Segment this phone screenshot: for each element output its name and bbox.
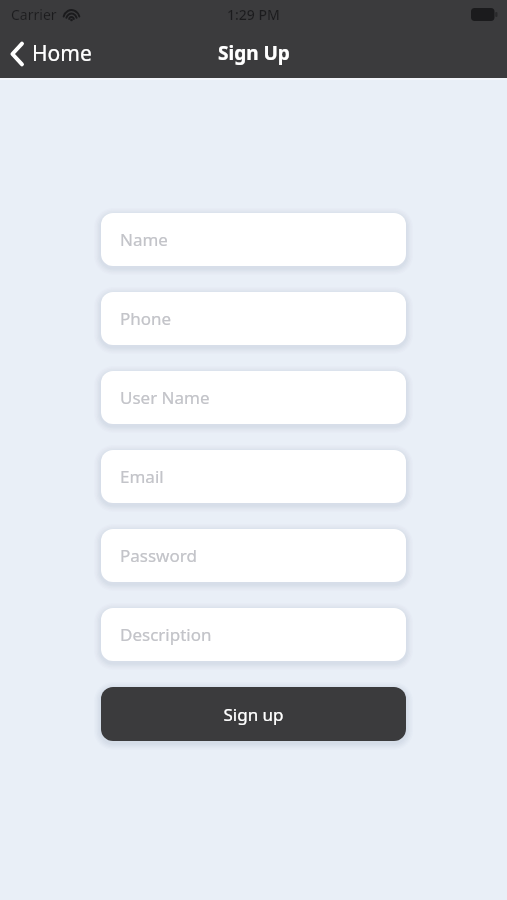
staticText: Description (120, 623, 212, 646)
staticText: Carrier (11, 5, 57, 24)
staticText: User Name (120, 386, 210, 409)
button[interactable]: Sign up (101, 687, 406, 741)
button[interactable]: Email (101, 450, 406, 503)
staticText: Home (32, 39, 92, 68)
button[interactable]: Name (101, 213, 406, 266)
staticText: Password (120, 544, 197, 567)
button[interactable]: User Name (101, 371, 406, 424)
staticText: Phone (120, 307, 172, 330)
staticText: Name (120, 228, 168, 251)
staticText: 1:29 PM (227, 5, 280, 24)
button[interactable]: Description (101, 608, 406, 661)
staticText: Sign Up (218, 40, 290, 66)
staticText: Email (120, 465, 164, 488)
staticText: Sign up (223, 703, 284, 726)
button[interactable]: Home (0, 33, 104, 74)
button[interactable]: Password (101, 529, 406, 582)
button[interactable]: Phone (101, 292, 406, 345)
